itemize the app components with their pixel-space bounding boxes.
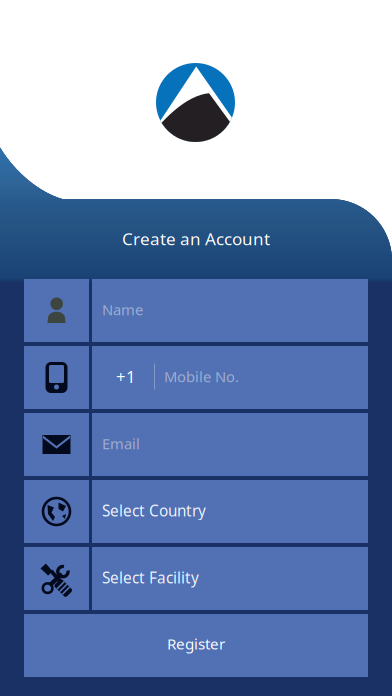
button[interactable]: Mobile number bbox=[24, 346, 89, 409]
button[interactable]: Name bbox=[24, 279, 89, 342]
button[interactable]: Select facility bbox=[24, 547, 89, 610]
button[interactable]: Register bbox=[24, 614, 368, 677]
staticText: Select Facility bbox=[102, 567, 199, 588]
staticText: Name bbox=[102, 299, 143, 319]
button[interactable]: Name bbox=[92, 279, 368, 342]
staticText: Register bbox=[167, 633, 225, 654]
button[interactable]: +1 bbox=[92, 346, 368, 409]
staticText: Email bbox=[102, 433, 140, 453]
staticText: Create an Account bbox=[122, 227, 270, 250]
staticText: Mobile No. bbox=[164, 366, 239, 386]
button[interactable]: Select Facility bbox=[92, 547, 368, 610]
button[interactable]: Email bbox=[92, 413, 368, 476]
button[interactable]: Select Country bbox=[92, 480, 368, 543]
button[interactable]: Select country bbox=[24, 480, 89, 543]
staticText: +1 bbox=[116, 365, 136, 388]
button[interactable]: Email bbox=[24, 413, 89, 476]
staticText: Select Country bbox=[102, 500, 206, 521]
